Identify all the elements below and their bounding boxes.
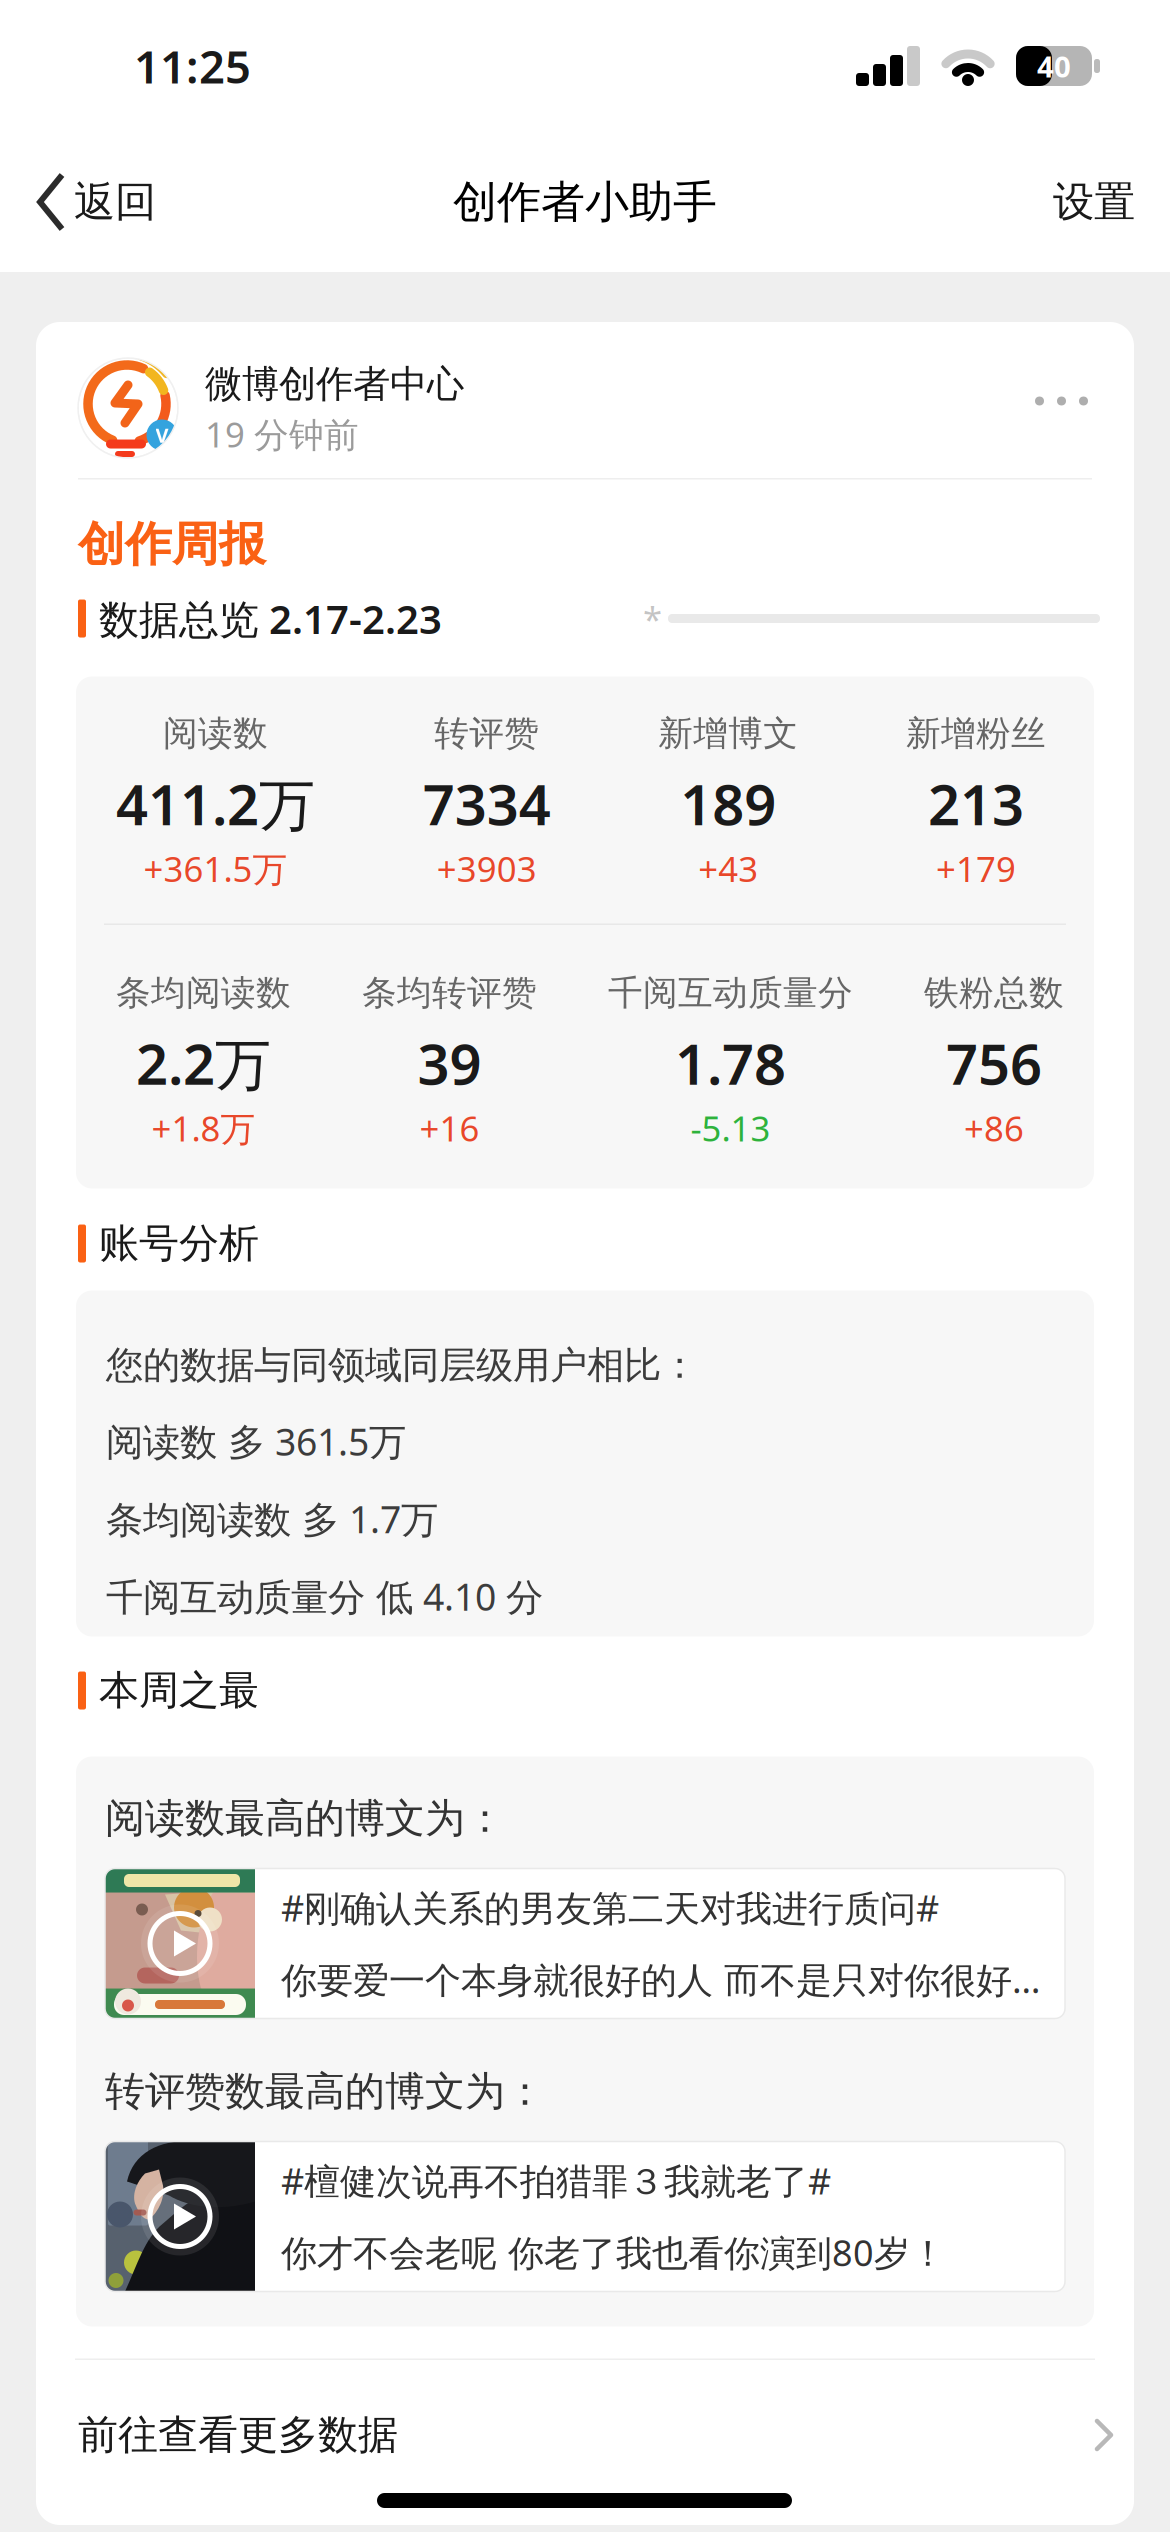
- staticText: +1.8万: [151, 1105, 255, 1151]
- staticText: 账号分析: [99, 1219, 259, 1268]
- staticText: 本周之最: [99, 1666, 259, 1715]
- staticText: 213: [928, 766, 1024, 841]
- button[interactable]: #檀健次说再不拍猎罪３我就老了#: [105, 2141, 1065, 2291]
- staticText: 阅读数最高的博文为：: [105, 1794, 505, 1843]
- staticText: -5.13: [690, 1105, 770, 1151]
- staticText: 11:25: [134, 36, 251, 96]
- staticText: 189: [680, 766, 776, 841]
- staticText: 40: [1037, 46, 1071, 85]
- staticText: 条均阅读数 多 1.7万: [106, 1494, 438, 1543]
- staticText: 39: [417, 1026, 481, 1100]
- staticText: 您的数据与同领域同层级用户相比：: [106, 1342, 698, 1388]
- staticText: +43: [698, 845, 758, 891]
- staticText: #刚确认关系的男友第二天对我进行质问#: [281, 1884, 939, 1931]
- button[interactable]: 返回: [0, 172, 156, 232]
- staticText: 你才不会老呢 你老了我也看你演到80岁！: [281, 2228, 946, 2276]
- staticText: 新增博文: [658, 712, 798, 755]
- staticText: 19 分钟前: [205, 411, 359, 457]
- button[interactable]: 更多: [1035, 396, 1092, 405]
- staticText: #檀健次说再不拍猎罪３我就老了#: [281, 2157, 831, 2204]
- staticText: 转评赞数最高的博文为：: [105, 2067, 545, 2116]
- staticText: *: [643, 595, 662, 641]
- staticText: 阅读数: [163, 712, 268, 755]
- staticText: 数据总览 2.17-2.23: [99, 592, 442, 645]
- button[interactable]: 前往查看更多数据: [36, 2360, 1134, 2459]
- staticText: 你要爱一个本身就很好的人 而不是只对你很好…: [281, 1955, 1040, 2003]
- staticText: 411.2万: [116, 766, 315, 841]
- staticText: 转评赞: [434, 712, 539, 755]
- staticText: 千阅互动质量分 低 4.10 分: [106, 1571, 543, 1621]
- staticText: +3903: [437, 845, 537, 891]
- staticText: 微博创作者中心: [205, 361, 464, 407]
- staticText: 设置: [1053, 177, 1135, 227]
- staticText: V: [155, 422, 168, 448]
- staticText: 7334: [423, 766, 551, 841]
- button[interactable]: #刚确认关系的男友第二天对我进行质问#: [105, 1868, 1065, 2018]
- staticText: 756: [946, 1026, 1042, 1100]
- staticText: 阅读数 多 361.5万: [106, 1416, 406, 1466]
- staticText: +179: [936, 845, 1016, 891]
- staticText: +86: [964, 1105, 1024, 1151]
- staticText: 千阅互动质量分: [608, 972, 853, 1014]
- staticText: 条均转评赞: [362, 972, 537, 1014]
- staticText: 铁粉总数: [924, 972, 1064, 1014]
- staticText: 新增粉丝: [906, 712, 1046, 755]
- staticText: 返回: [74, 177, 156, 227]
- staticText: +361.5万: [143, 845, 287, 891]
- staticText: 创作者小助手: [453, 175, 717, 229]
- staticText: 条均阅读数: [116, 972, 291, 1014]
- staticText: 创作周报: [78, 516, 266, 573]
- staticText: +16: [419, 1105, 479, 1151]
- staticText: 1.78: [675, 1026, 786, 1100]
- staticText: 前往查看更多数据: [78, 2410, 398, 2459]
- button[interactable]: 设置: [1053, 177, 1170, 227]
- staticText: 2.2万: [136, 1026, 271, 1100]
